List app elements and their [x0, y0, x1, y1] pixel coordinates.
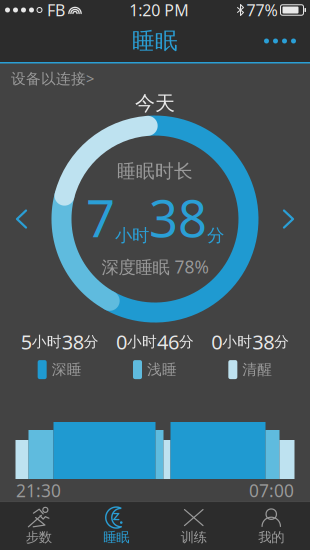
- staticText: 睡眠: [103, 529, 129, 545]
- staticText: 0: [116, 328, 127, 355]
- staticText: 38: [62, 328, 84, 355]
- staticText: 睡眠时长: [117, 160, 193, 183]
- staticText: 步数: [26, 529, 52, 545]
- button[interactable]: 步数: [0, 502, 77, 550]
- staticText: 7: [86, 184, 115, 251]
- staticText: 小时: [32, 333, 62, 351]
- staticText: 小时: [222, 333, 252, 351]
- staticText: 5: [21, 328, 32, 355]
- staticText: 睡眠: [132, 27, 178, 55]
- staticText: 训练: [181, 529, 207, 545]
- staticText: 我的: [258, 529, 284, 545]
- staticText: 07:00: [249, 479, 294, 502]
- staticText: 46: [157, 328, 179, 355]
- button[interactable]: 我的: [232, 502, 310, 550]
- button[interactable]: More: [250, 25, 310, 56]
- staticText: 分: [207, 225, 224, 246]
- staticText: 分: [274, 333, 289, 351]
- button[interactable]: 训练: [155, 502, 232, 550]
- button[interactable]: 睡眠: [77, 502, 155, 550]
- staticText: 清醒: [242, 361, 272, 379]
- staticText: 分: [84, 333, 99, 351]
- staticText: 分: [179, 333, 194, 351]
- staticText: 深睡: [52, 361, 82, 379]
- staticText: 38: [252, 328, 274, 355]
- staticText: FB: [47, 0, 65, 21]
- staticText: 77%: [246, 0, 277, 21]
- staticText: 设备以连接>: [11, 68, 94, 88]
- staticText: 小时: [115, 225, 149, 246]
- staticText: 浅睡: [147, 361, 177, 379]
- staticText: 0: [211, 328, 222, 355]
- button[interactable]: Previous day: [0, 196, 40, 241]
- button[interactable]: 设备以连接>: [0, 65, 102, 91]
- staticText: 1:20 PM: [129, 0, 189, 21]
- staticText: 38: [149, 184, 207, 251]
- button[interactable]: Next day: [270, 196, 310, 241]
- staticText: 小时: [127, 333, 157, 351]
- staticText: 深度睡眠 78%: [101, 255, 208, 278]
- staticText: 21:30: [16, 479, 61, 502]
- staticText: 今天: [135, 91, 175, 116]
